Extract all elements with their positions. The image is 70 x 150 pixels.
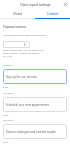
button[interactable]: Close: [62, 1, 69, 8]
staticText: Enter number only. Will still show in th…: [3, 49, 44, 58]
staticText: Next step 1: [3, 64, 14, 67]
button[interactable]: Global: [0, 9, 35, 19]
staticText: Next step 2: [3, 92, 14, 95]
button[interactable]: Content: [35, 9, 70, 19]
staticText: $: [24, 43, 26, 47]
staticText: Next step 3: [3, 119, 14, 122]
button[interactable]: Discuss strategies and commit to plan: [3, 124, 67, 139]
staticText: 37/60: [3, 141, 9, 144]
staticText: Global: [13, 12, 23, 16]
staticText: Proposal content: [3, 25, 26, 29]
staticText: Sign up for our services: [6, 75, 37, 79]
button[interactable]: $: [3, 41, 30, 48]
staticText: 30/60: [3, 114, 9, 117]
staticText: Your investment in our services and your…: [3, 34, 46, 37]
button[interactable]: Schedule your next appointment: [3, 97, 67, 112]
staticText: Client report settings: [20, 3, 51, 7]
staticText: Discuss strategies and commit to plan: [6, 130, 56, 134]
staticText: Schedule your next appointment: [6, 103, 49, 107]
button[interactable]: Sign up for our services: [3, 69, 67, 84]
staticText: 24/60: [3, 86, 9, 89]
staticText: Content: [47, 12, 59, 16]
